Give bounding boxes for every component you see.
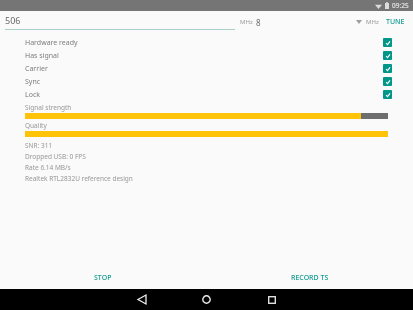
button[interactable]: RECORD TS [206, 267, 413, 289]
staticText: Carrier [25, 64, 48, 74]
button[interactable]: Carrier [0, 62, 413, 75]
staticText: Signal strength [25, 103, 72, 112]
staticText: Lock [25, 90, 41, 100]
button[interactable]: 506 [5, 14, 235, 30]
staticText: Sync [25, 77, 41, 87]
button[interactable]: Home [174, 289, 239, 310]
staticText: 506 [5, 14, 21, 26]
button[interactable]: TUNE [384, 14, 407, 30]
staticText: MHz [366, 18, 379, 26]
staticText: Quality [25, 121, 47, 130]
staticText: Hardware ready [25, 38, 78, 48]
button[interactable]: Lock [0, 88, 413, 101]
staticText: Realtek RTL2832U reference design [25, 174, 133, 183]
staticText: STOP [94, 273, 112, 283]
staticText: 8 [256, 17, 261, 28]
button[interactable]: Back [109, 289, 174, 310]
staticText: MHz [240, 18, 253, 26]
staticText: RECORD TS [291, 273, 329, 283]
staticText: SNR: 311 [25, 141, 53, 150]
staticText: Dropped USB: 0 FPS [25, 152, 86, 161]
button[interactable]: Select band [352, 13, 365, 31]
button[interactable]: Recents [239, 289, 304, 310]
staticText: Has signal [25, 51, 59, 61]
button[interactable]: Has signal [0, 49, 413, 62]
staticText: Rate 6.14 MB/s [25, 163, 71, 172]
button[interactable]: Hardware ready [0, 36, 413, 49]
button[interactable]: STOP [0, 267, 206, 289]
staticText: 09:25 [392, 1, 409, 10]
button[interactable]: Sync [0, 75, 413, 88]
staticText: TUNE [386, 17, 405, 27]
